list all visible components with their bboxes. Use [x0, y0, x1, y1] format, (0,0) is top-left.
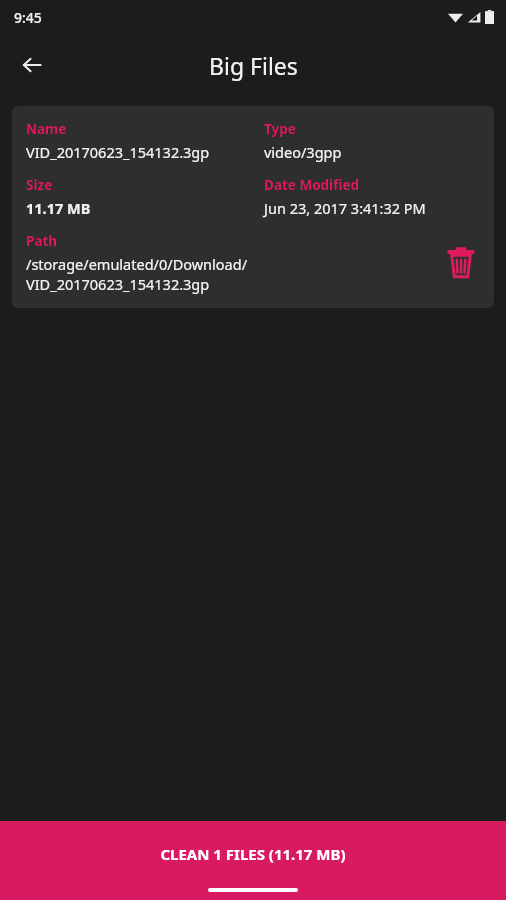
staticText: VID_20170623_154132.3gp: [26, 142, 210, 162]
staticText: 11.17 MB: [26, 198, 91, 218]
staticText: video/3gpp: [264, 142, 342, 162]
staticText: 9:45: [14, 8, 42, 27]
staticText: VID_20170623_154132.3gp: [26, 274, 210, 294]
staticText: Size: [26, 176, 53, 194]
staticText: Big Files: [209, 50, 298, 81]
staticText: Path: [26, 232, 58, 250]
button[interactable]: Back: [8, 41, 56, 89]
staticText: Name: [26, 120, 67, 138]
staticText: Jun 23, 2017 3:41:32 PM: [264, 198, 426, 218]
button[interactable]: CLEAN 1 FILES (11.17 MB): [0, 821, 506, 900]
button[interactable]: Delete: [12, 106, 494, 308]
staticText: /storage/emulated/0/Download/: [26, 254, 248, 274]
button[interactable]: Delete: [438, 240, 484, 286]
staticText: Type: [264, 120, 296, 138]
staticText: CLEAN 1 FILES (11.17 MB): [0, 844, 506, 864]
staticText: Date Modified: [264, 176, 359, 194]
